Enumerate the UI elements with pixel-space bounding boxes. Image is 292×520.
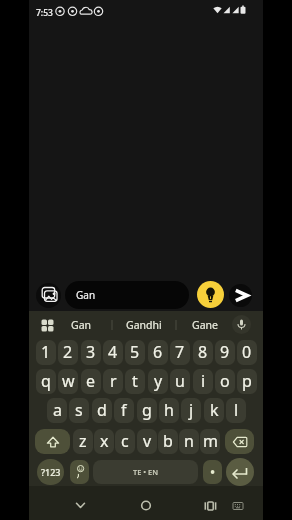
button[interactable]: w: [58, 369, 78, 394]
staticText: w: [62, 370, 75, 392]
staticText: Gan: [71, 318, 92, 332]
button[interactable]: 2: [58, 340, 78, 365]
staticText: c: [121, 430, 129, 452]
staticText: h: [164, 399, 174, 421]
staticText: o: [220, 370, 230, 392]
staticText: TE • EN: [133, 467, 159, 477]
staticText: Gandhi: [126, 318, 162, 332]
button[interactable]: TE • EN: [93, 460, 198, 484]
button[interactable]: z: [73, 429, 93, 454]
button[interactable]: [197, 281, 224, 308]
button[interactable]: Gane: [189, 318, 220, 332]
button[interactable]: 1: [36, 340, 56, 365]
button[interactable]: 0: [237, 340, 257, 365]
staticText: 7:53: [36, 7, 53, 19]
staticText: 2: [63, 341, 73, 363]
staticText: 4: [108, 341, 118, 363]
button[interactable]: [70, 460, 89, 484]
staticText: v: [143, 430, 152, 452]
button[interactable]: ?123: [37, 459, 64, 485]
button[interactable]: v: [137, 429, 157, 454]
button[interactable]: t: [125, 369, 145, 394]
button[interactable]: i: [193, 369, 213, 394]
button[interactable]: x: [94, 429, 114, 454]
staticText: Gan: [76, 288, 96, 302]
button[interactable]: [36, 283, 61, 308]
staticText: 7: [175, 341, 185, 363]
button[interactable]: r: [103, 369, 123, 394]
staticText: Gane: [192, 318, 218, 332]
button[interactable]: j: [181, 398, 201, 423]
staticText: y: [154, 370, 163, 392]
staticText: l: [234, 399, 239, 421]
staticText: t: [132, 370, 138, 392]
button[interactable]: [35, 429, 70, 454]
button[interactable]: [232, 315, 251, 334]
staticText: p: [242, 370, 252, 392]
button[interactable]: Gandhi: [124, 318, 164, 332]
button[interactable]: a: [47, 398, 67, 423]
button[interactable]: 8: [193, 340, 213, 365]
staticText: u: [175, 370, 185, 392]
staticText: 8: [198, 341, 208, 363]
staticText: ?123: [41, 466, 61, 478]
staticText: e: [86, 370, 96, 392]
staticText: 0: [242, 341, 252, 363]
button[interactable]: e: [81, 369, 101, 394]
staticText: z: [79, 430, 87, 452]
button[interactable]: k: [204, 398, 224, 423]
button[interactable]: [226, 458, 254, 486]
button[interactable]: h: [159, 398, 179, 423]
staticText: s: [75, 399, 83, 421]
button[interactable]: [229, 284, 252, 307]
button[interactable]: q: [36, 369, 56, 394]
staticText: f: [121, 399, 127, 421]
button[interactable]: [135, 495, 156, 516]
button[interactable]: b: [158, 429, 178, 454]
staticText: r: [110, 370, 117, 392]
button[interactable]: 7: [170, 340, 190, 365]
button[interactable]: s: [69, 398, 89, 423]
button[interactable]: 6: [148, 340, 168, 365]
staticText: q: [41, 370, 51, 392]
button[interactable]: [70, 495, 91, 516]
button[interactable]: f: [114, 398, 134, 423]
button[interactable]: 3: [81, 340, 101, 365]
staticText: m: [203, 430, 218, 452]
button[interactable]: [225, 429, 254, 454]
staticText: d: [97, 399, 107, 421]
button[interactable]: m: [200, 429, 220, 454]
button[interactable]: y: [148, 369, 168, 394]
staticText: i: [201, 370, 206, 392]
button[interactable]: Gan: [67, 318, 95, 332]
staticText: b: [163, 430, 173, 452]
button[interactable]: 9: [215, 340, 235, 365]
staticText: 5: [130, 341, 140, 363]
staticText: a: [53, 399, 62, 421]
staticText: 6: [153, 341, 163, 363]
button[interactable]: [41, 319, 54, 332]
button[interactable]: 4: [103, 340, 123, 365]
button[interactable]: p: [237, 369, 257, 394]
button[interactable]: n: [179, 429, 199, 454]
button[interactable]: 5: [125, 340, 145, 365]
button[interactable]: [200, 495, 221, 516]
button[interactable]: u: [170, 369, 190, 394]
staticText: k: [210, 399, 219, 421]
button[interactable]: g: [137, 398, 157, 423]
staticText: g: [142, 399, 152, 421]
staticText: 9: [220, 341, 230, 363]
staticText: 3: [86, 341, 96, 363]
button[interactable]: d: [92, 398, 112, 423]
button[interactable]: [203, 460, 222, 484]
staticText: j: [189, 399, 194, 421]
button[interactable]: l: [226, 398, 246, 423]
button[interactable]: Gan: [65, 281, 189, 309]
staticText: 1: [41, 341, 51, 363]
staticText: n: [184, 430, 194, 452]
button[interactable]: o: [215, 369, 235, 394]
button[interactable]: c: [115, 429, 135, 454]
staticText: x: [100, 430, 109, 452]
